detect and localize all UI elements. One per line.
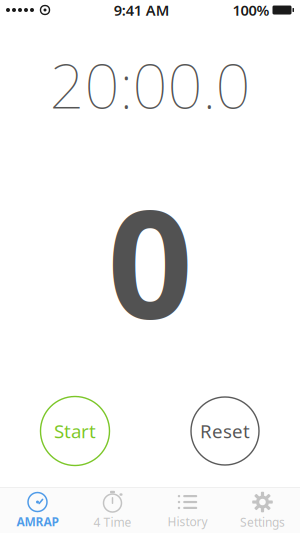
staticText: 9:41 AM	[114, 0, 170, 20]
button[interactable]: Settings	[225, 488, 300, 533]
button[interactable]: AMRAP	[0, 488, 75, 533]
staticText: 100%	[232, 0, 269, 20]
button[interactable]: History	[150, 488, 225, 533]
button[interactable]: Start	[40, 396, 109, 465]
button[interactable]: Reset	[191, 397, 259, 465]
staticText: 0	[107, 162, 192, 360]
staticText: 20:00.0	[49, 44, 250, 125]
staticText: Reset	[200, 419, 250, 443]
staticText: Start	[54, 419, 96, 443]
button[interactable]: 4 Time	[75, 488, 150, 533]
staticText: 4 Time	[93, 514, 131, 530]
staticText: History	[167, 513, 207, 529]
staticText: Settings	[240, 514, 285, 530]
staticText: AMRAP	[16, 513, 58, 529]
